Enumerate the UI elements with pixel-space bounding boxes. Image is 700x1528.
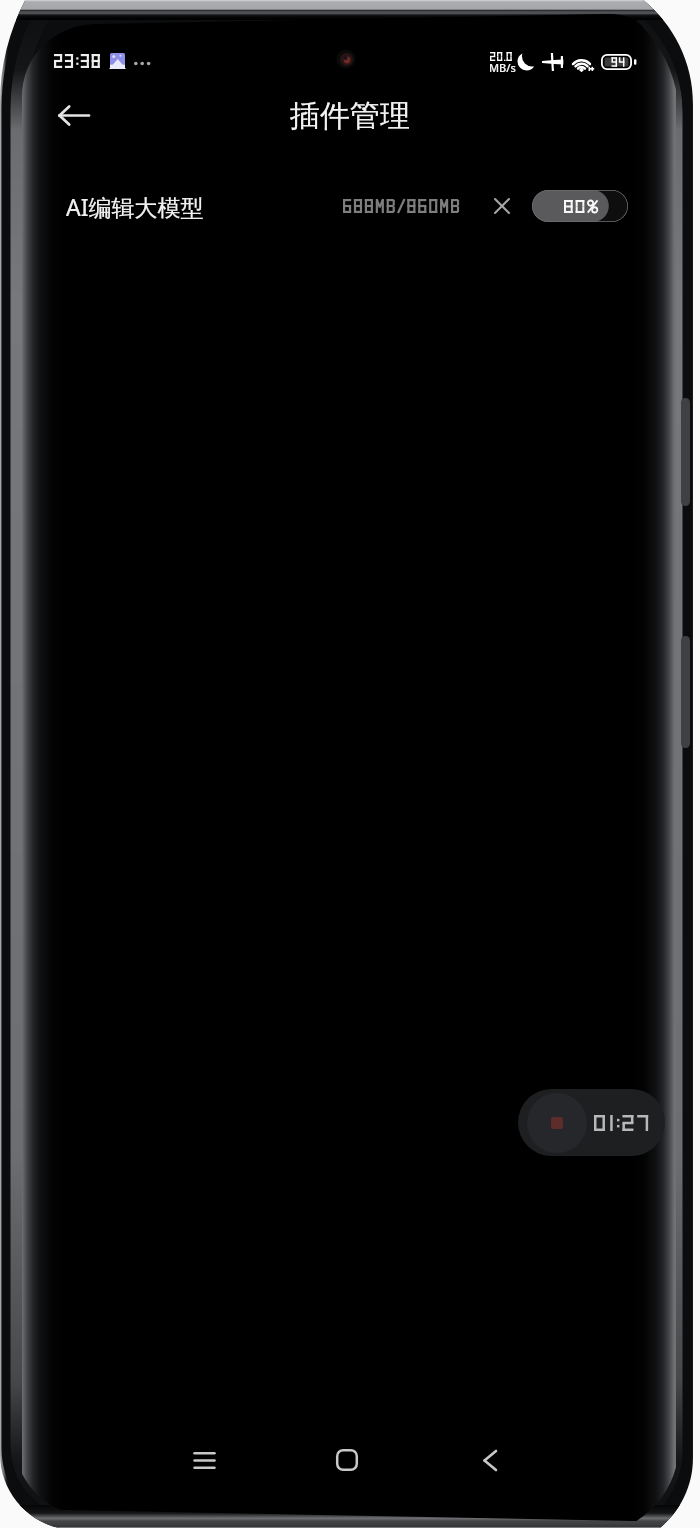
- button[interactable]: Stop screen recording: [518, 1089, 665, 1156]
- button[interactable]: AI编辑大模型: [28, 176, 668, 236]
- staticText: 插件管理: [290, 97, 410, 135]
- button[interactable]: Back: [44, 91, 104, 139]
- staticText: AI编辑大模型: [66, 191, 204, 222]
- button[interactable]: Recent apps: [174, 1430, 234, 1490]
- staticText: MB/s: [489, 60, 516, 75]
- button[interactable]: Back: [460, 1430, 520, 1490]
- button[interactable]: Home: [317, 1430, 377, 1490]
- button[interactable]: Cancel download: [484, 188, 520, 224]
- button[interactable]: [532, 190, 628, 222]
